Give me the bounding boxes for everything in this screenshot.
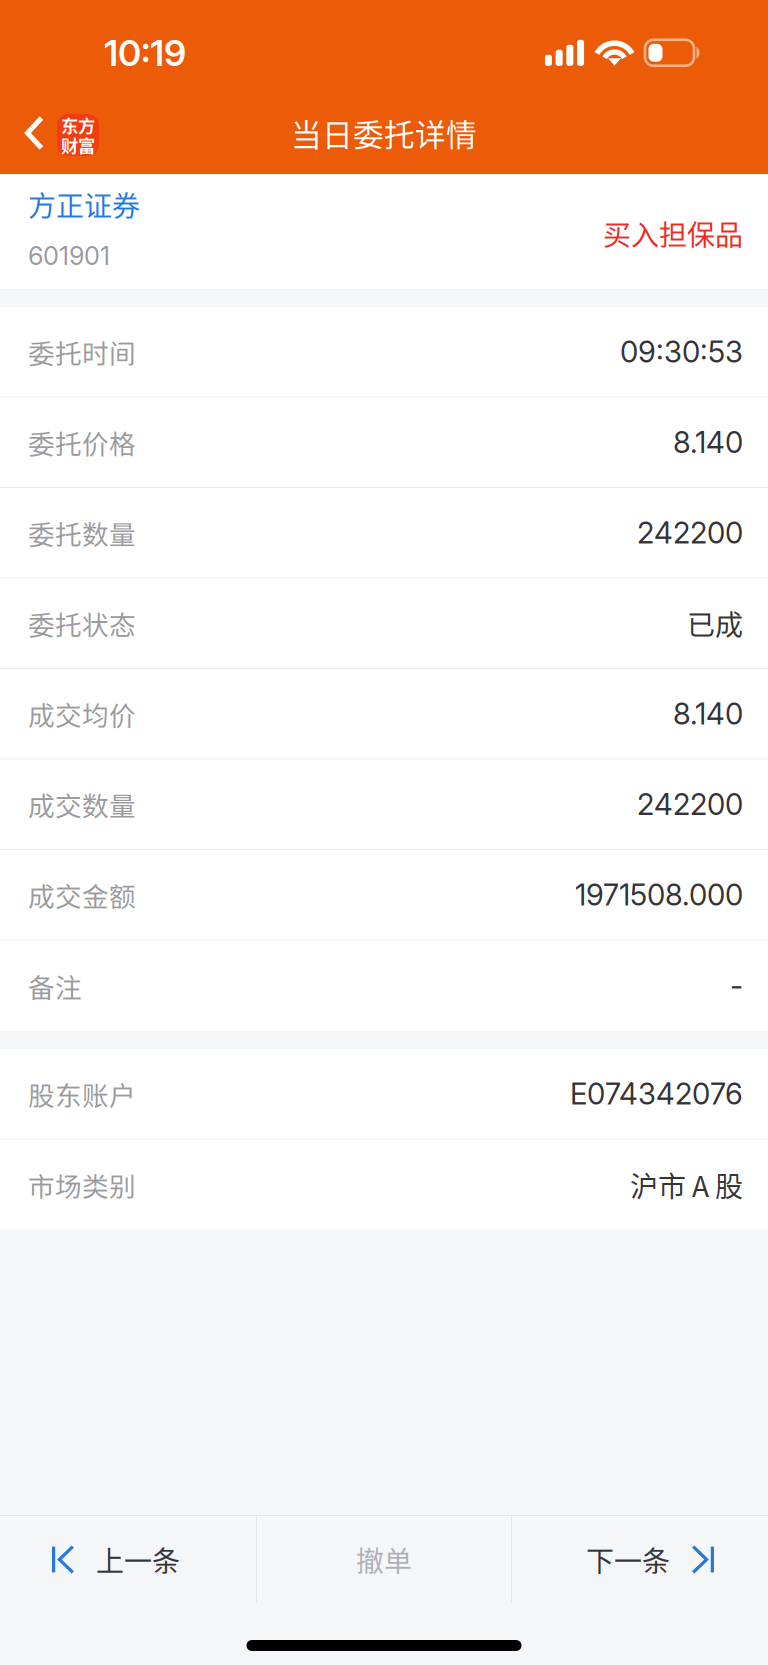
staticText: 买入担保品: [603, 213, 743, 253]
button[interactable]: Back, East Money: [0, 92, 115, 174]
staticText: 下一条: [586, 1539, 670, 1580]
staticText: 成交金额: [28, 875, 136, 914]
staticText: 成交数量: [28, 785, 136, 823]
staticText: 601901: [28, 240, 110, 271]
staticText: 当日委托详情: [291, 111, 477, 155]
button[interactable]: 撤单: [257, 1516, 511, 1603]
staticText: 财富: [61, 132, 95, 158]
staticText: 东方: [61, 112, 95, 137]
staticText: 委托时间: [28, 332, 136, 371]
staticText: 8.140: [673, 424, 743, 460]
staticText: 市场类别: [28, 1165, 136, 1204]
staticText: 委托价格: [28, 423, 136, 461]
staticText: 方正证券: [28, 184, 140, 224]
staticText: 委托数量: [28, 513, 136, 552]
button[interactable]: 下一条: [512, 1516, 768, 1603]
staticText: 委托状态: [28, 604, 136, 642]
staticText: 242200: [637, 786, 743, 822]
staticText: 沪市 A 股: [630, 1164, 743, 1205]
staticText: 已成: [687, 603, 743, 643]
staticText: -: [730, 968, 743, 1003]
staticText: 242200: [637, 515, 743, 550]
staticText: 09:30:53: [620, 334, 743, 369]
staticText: 股东账户: [28, 1074, 136, 1113]
staticText: 成交均价: [28, 694, 136, 733]
button[interactable]: 上一条: [0, 1516, 256, 1603]
staticText: 备注: [28, 966, 82, 1005]
staticText: 上一条: [96, 1539, 180, 1580]
staticText: 10:19: [104, 31, 186, 75]
staticText: 1971508.000: [575, 877, 743, 912]
staticText: E074342076: [570, 1076, 743, 1111]
staticText: 8.140: [673, 696, 743, 731]
staticText: 撤单: [356, 1539, 412, 1580]
